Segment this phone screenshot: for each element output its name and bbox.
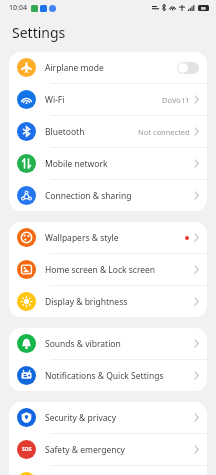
button[interactable]: Mobile network: [9, 148, 207, 179]
button[interactable]: Wallpapers & style: [9, 222, 207, 253]
button[interactable]: Password & biometrics: [9, 466, 207, 475]
staticText: Mobile network: [45, 158, 194, 170]
staticText: DoVo11: [162, 95, 190, 105]
staticText: Wi-Fi: [45, 94, 162, 106]
staticText: Sounds & vibration: [45, 338, 194, 350]
button[interactable]: Notifications & Quick Settings: [9, 360, 207, 391]
button[interactable]: Wi-Fi: [9, 84, 207, 115]
staticText: Settings: [12, 23, 66, 42]
button[interactable]: Airplane mode: [9, 52, 207, 83]
staticText: Notifications & Quick Settings: [45, 370, 194, 382]
button[interactable]: Airplane mode toggle: [177, 62, 199, 74]
staticText: Home screen & Lock screen: [45, 264, 194, 276]
staticText: 10:04: [9, 3, 27, 13]
staticText: Connection & sharing: [45, 190, 194, 202]
button[interactable]: Security & privacy: [9, 402, 207, 433]
staticText: Display & brightness: [45, 296, 194, 308]
staticText: Bluetooth: [45, 126, 138, 138]
button[interactable]: Display & brightness: [9, 286, 207, 317]
button[interactable]: Bluetooth: [9, 116, 207, 147]
staticText: 99: [201, 6, 206, 11]
staticText: Safety & emergency: [45, 444, 194, 456]
button[interactable]: SOS: [9, 434, 207, 465]
button[interactable]: Sounds & vibration: [9, 328, 207, 359]
staticText: Not connected: [138, 127, 190, 137]
staticText: Security & privacy: [45, 412, 194, 424]
staticText: Wallpapers & style: [45, 232, 185, 244]
button[interactable]: Home screen & Lock screen: [9, 254, 207, 285]
button[interactable]: Connection & sharing: [9, 180, 207, 211]
staticText: SOS: [22, 446, 32, 453]
staticText: Airplane mode: [45, 62, 177, 74]
